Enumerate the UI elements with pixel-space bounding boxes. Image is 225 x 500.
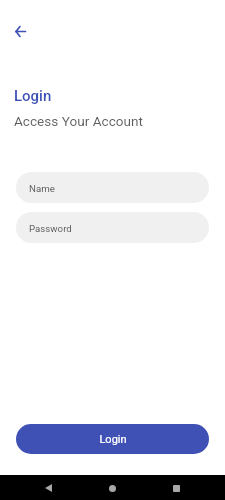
staticText: Login [99, 433, 127, 446]
button[interactable]: Home [100, 476, 124, 500]
button[interactable]: Password [16, 212, 209, 243]
button[interactable]: Back [8, 19, 32, 43]
button[interactable]: Recent apps [164, 476, 188, 500]
button[interactable]: Back [36, 476, 60, 500]
staticText: Name [29, 183, 55, 194]
button[interactable]: Name [16, 172, 209, 203]
staticText: Access Your Account [14, 113, 143, 129]
staticText: Password [29, 223, 72, 234]
staticText: Login [14, 87, 52, 105]
button[interactable]: Login [16, 424, 209, 454]
